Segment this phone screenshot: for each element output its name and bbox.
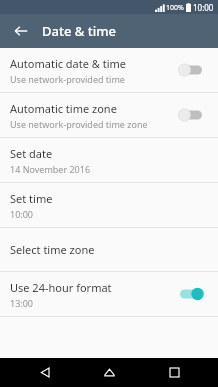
- staticText: 10:00: [10, 208, 34, 220]
- staticText: Date & time: [42, 22, 116, 40]
- button[interactable]: Toggle on: [174, 282, 208, 306]
- staticText: Set date: [10, 146, 53, 161]
- button[interactable]: Toggle off: [174, 103, 208, 127]
- staticText: Automatic date & time: [10, 56, 127, 71]
- staticText: 13:00: [10, 297, 34, 309]
- button[interactable]: Use 24-hour format: [0, 272, 218, 316]
- button[interactable]: Home: [89, 358, 129, 387]
- staticText: Select time zone: [10, 242, 95, 257]
- button[interactable]: Automatic time zone: [0, 93, 218, 137]
- button[interactable]: Set date: [0, 138, 218, 182]
- button[interactable]: Toggle off: [174, 58, 208, 82]
- staticText: Automatic time zone: [10, 101, 117, 116]
- staticText: Use network-provided time: [10, 73, 125, 85]
- button[interactable]: Recent apps: [154, 358, 194, 387]
- button[interactable]: Automatic date & time: [0, 48, 218, 92]
- staticText: Use 24-hour format: [10, 280, 112, 295]
- button[interactable]: Set time: [0, 183, 218, 227]
- staticText: Use network-provided time zone: [10, 118, 148, 130]
- staticText: 100%: [166, 3, 184, 13]
- staticText: Set time: [10, 191, 53, 206]
- button[interactable]: Back: [8, 18, 34, 44]
- button[interactable]: Back: [25, 358, 65, 387]
- button[interactable]: Select time zone: [0, 228, 218, 271]
- staticText: 14 November 2016: [10, 163, 91, 175]
- staticText: 10:00: [193, 2, 214, 13]
